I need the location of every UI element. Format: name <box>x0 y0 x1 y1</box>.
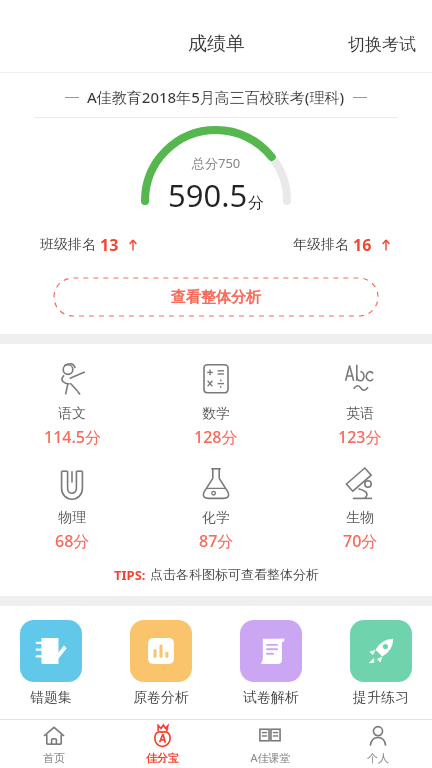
staticText: A佳课堂 <box>250 750 291 765</box>
button[interactable]: 个人 <box>324 720 432 768</box>
button[interactable]: A佳课堂 <box>216 720 324 768</box>
staticText: 物理 <box>58 509 86 527</box>
staticText: 试卷解析 <box>243 689 299 707</box>
staticText: 数学 <box>202 405 230 423</box>
button[interactable]: 试卷解析 <box>234 620 308 707</box>
staticText: 查看整体分析 <box>171 288 261 307</box>
staticText: 佳分宝 <box>146 751 179 765</box>
staticText: 个人 <box>367 751 389 765</box>
staticText: 生物 <box>346 509 374 527</box>
staticText: 切换考试 <box>348 34 416 55</box>
button[interactable]: 年级排名 <box>293 230 392 260</box>
staticText: 成绩单 <box>188 32 245 56</box>
staticText: 英语 <box>346 405 374 423</box>
button[interactable]: 首页 <box>0 720 108 768</box>
staticText: 提升练习 <box>353 689 409 707</box>
button[interactable]: 班级排名 <box>40 230 139 260</box>
button[interactable]: 错题集 <box>14 620 88 707</box>
staticText: 原卷分析 <box>133 689 189 707</box>
staticText: 70分 <box>343 530 378 552</box>
button[interactable]: 语文 <box>0 356 144 452</box>
staticText: 班级排名 <box>40 236 96 254</box>
button[interactable]: 物理 <box>0 460 144 556</box>
staticText: 128分 <box>194 426 238 448</box>
staticText: 87分 <box>199 530 234 552</box>
staticText: 分 <box>248 193 264 213</box>
button[interactable]: 原卷分析 <box>124 620 198 707</box>
button[interactable]: 数学 <box>144 356 288 452</box>
button[interactable]: 查看整体分析 <box>54 278 378 316</box>
staticText: 123分 <box>338 426 382 448</box>
staticText: 点击各科图标可查看整体分析 <box>150 566 319 582</box>
staticText: 13 <box>100 234 119 256</box>
button[interactable]: 生物 <box>288 460 432 556</box>
staticText: 68分 <box>55 530 90 552</box>
staticText: TIPS: <box>114 566 146 584</box>
staticText: 年级排名 <box>293 236 349 254</box>
staticText: 16 <box>353 234 372 256</box>
button[interactable]: 佳分宝 <box>108 720 216 768</box>
staticText: 化学 <box>202 509 230 527</box>
staticText: 语文 <box>58 405 86 423</box>
button[interactable]: 提升练习 <box>344 620 418 707</box>
button[interactable]: 化学 <box>144 460 288 556</box>
button[interactable]: 切换考试 <box>332 26 432 63</box>
staticText: 590.5 <box>168 174 248 216</box>
button[interactable]: 英语 <box>288 356 432 452</box>
staticText: 总分750 <box>192 154 241 172</box>
staticText: 错题集 <box>30 689 72 707</box>
staticText: 114.5分 <box>44 426 101 448</box>
staticText: 首页 <box>43 751 65 765</box>
staticText: A佳教育2018年5月高三百校联考(理科) <box>87 87 345 107</box>
